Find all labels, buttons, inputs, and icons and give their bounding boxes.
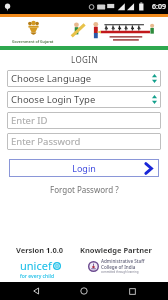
staticText: Administrative Staff: [101, 258, 145, 264]
staticText: Enter Password: [11, 135, 81, 148]
staticText: LOGIN: [71, 54, 98, 65]
staticText: Choose Login Type: [11, 93, 152, 106]
staticText: unicef: [20, 258, 52, 273]
button[interactable]: Choose Login Type: [7, 91, 161, 108]
staticText: Login: [72, 162, 96, 174]
button[interactable]: Back: [24, 282, 48, 300]
staticText: Government of Gujarat: [12, 39, 54, 44]
button[interactable]: Recent apps: [120, 282, 144, 300]
staticText: Forgot Password ?: [50, 184, 119, 195]
staticText: Enter ID: [11, 114, 48, 127]
staticText: for every child: [20, 273, 54, 280]
button[interactable]: Home: [72, 282, 96, 300]
button[interactable]: Forgot Password ?: [0, 184, 168, 195]
staticText: committed through learning: [101, 270, 139, 274]
staticText: 6:09: [152, 2, 166, 12]
staticText: College of India: [101, 264, 136, 270]
staticText: Knowledge Partner: [80, 245, 152, 255]
button[interactable]: Login: [9, 159, 159, 177]
button[interactable]: Choose Language: [7, 70, 161, 87]
staticText: Version 1.0.0: [16, 245, 64, 255]
button[interactable]: Enter ID: [7, 112, 161, 129]
button[interactable]: Enter Password: [7, 133, 161, 150]
staticText: Choose Language: [11, 72, 152, 85]
